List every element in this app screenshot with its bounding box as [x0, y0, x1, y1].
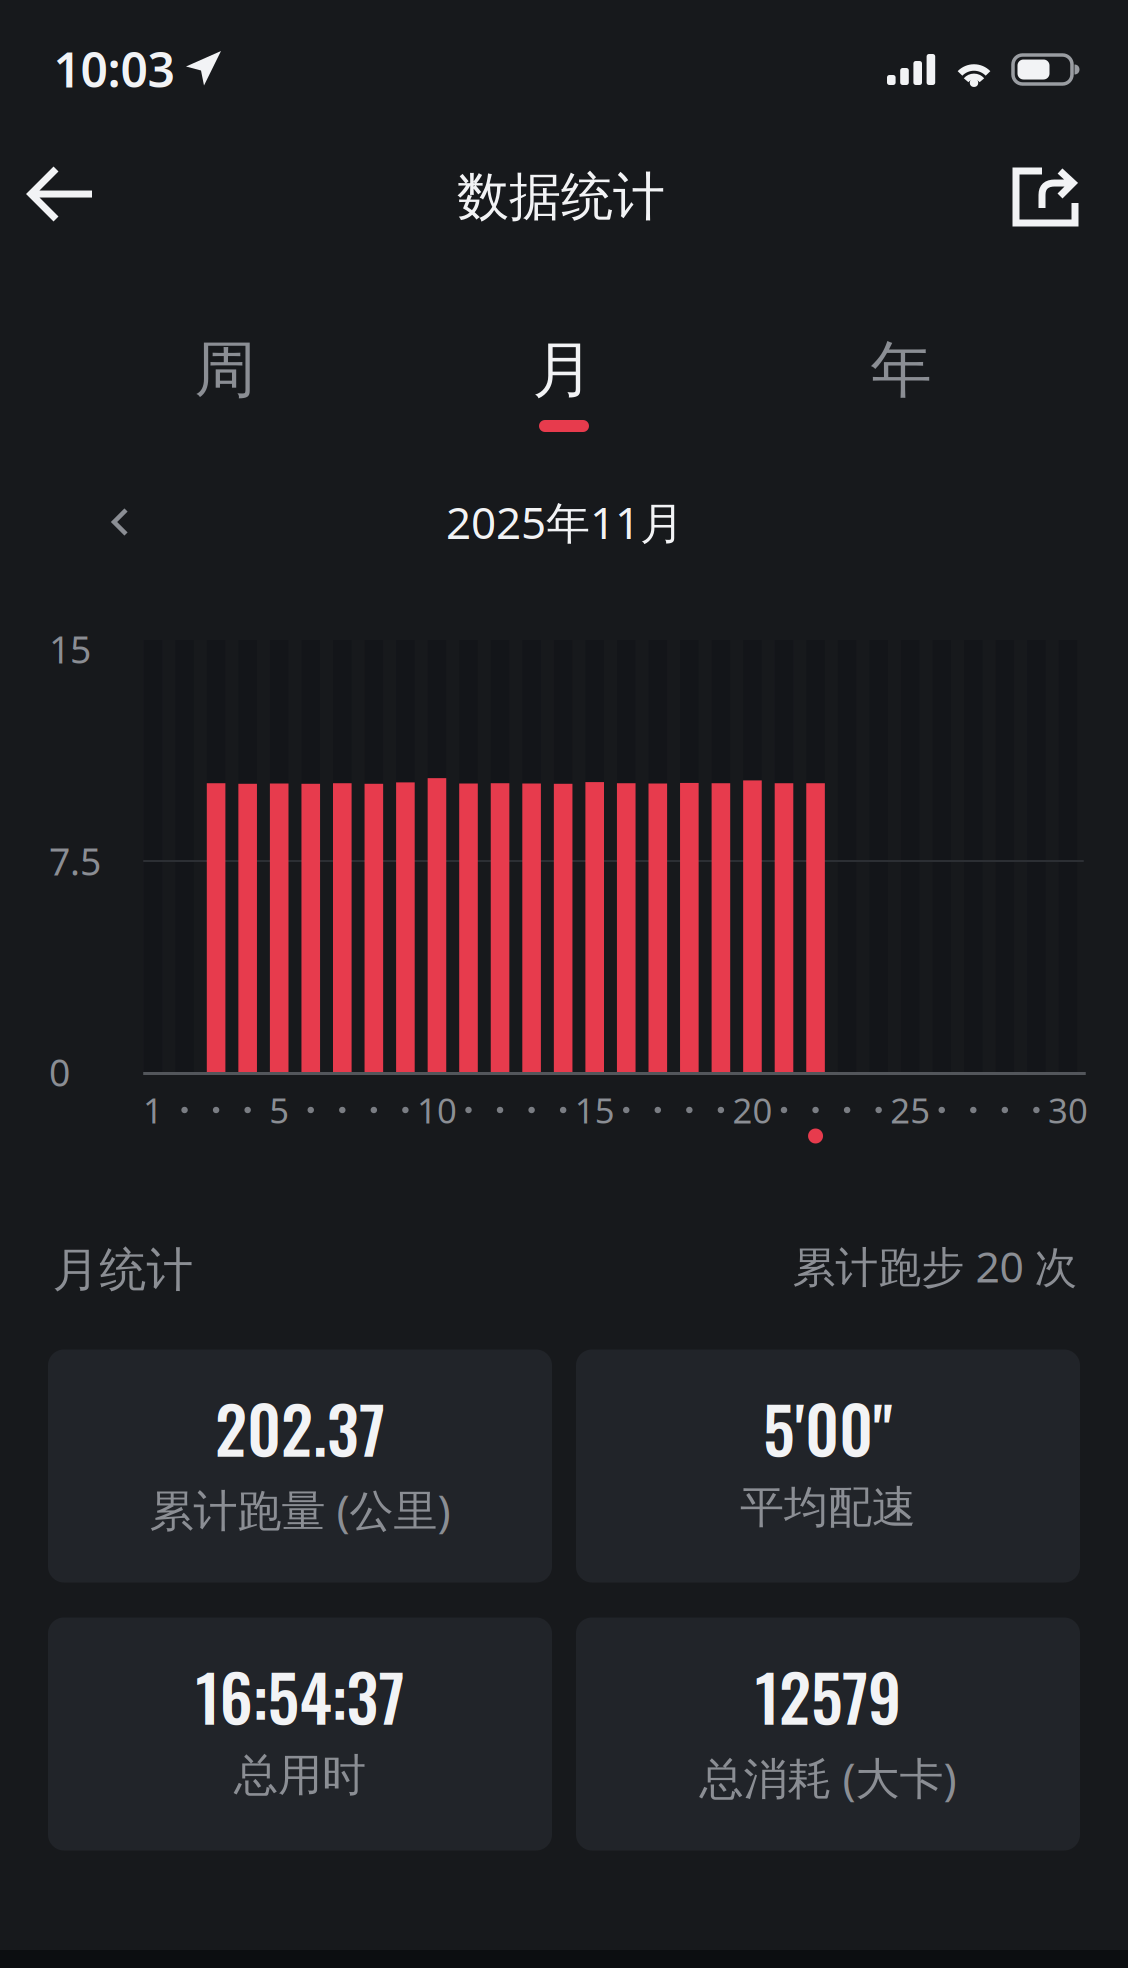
button[interactable]: Previous month — [78, 480, 162, 564]
staticText: 15 — [575, 1087, 615, 1133]
staticText: 平均配速 — [740, 1480, 916, 1534]
staticText: 30 — [1048, 1087, 1088, 1133]
staticText: 202.37 — [215, 1380, 385, 1475]
button[interactable]: Back — [6, 138, 118, 250]
staticText: 10:03 — [53, 37, 174, 101]
staticText: 月统计 — [52, 1241, 193, 1299]
button[interactable]: 12579 — [576, 1617, 1080, 1850]
staticText: 数据统计 — [457, 165, 665, 229]
button[interactable]: 5'00'' — [576, 1349, 1080, 1582]
staticText: 15 — [49, 624, 91, 674]
staticText: 年 — [870, 332, 931, 408]
button[interactable]: 202.37 — [48, 1349, 552, 1582]
staticText: 月 — [532, 332, 593, 408]
button[interactable]: Share — [990, 141, 1102, 253]
staticText: 总用时 — [234, 1748, 366, 1802]
staticText: 16:54:37 — [195, 1648, 404, 1743]
staticText: 20 — [732, 1087, 772, 1133]
staticText: 12579 — [755, 1648, 901, 1743]
staticText: 5 — [269, 1087, 289, 1133]
staticText: 累计跑步 20 次 — [792, 1238, 1077, 1294]
staticText: 累计跑量 (公里) — [149, 1480, 450, 1539]
staticText: 10 — [417, 1087, 457, 1133]
button[interactable]: 月 — [398, 305, 728, 435]
staticText: 1 — [143, 1087, 163, 1133]
staticText: 0 — [49, 1047, 70, 1097]
button[interactable]: 年 — [736, 305, 1066, 435]
staticText: 2025年11月 — [446, 493, 684, 551]
staticText: 周 — [194, 332, 255, 408]
staticText: 25 — [890, 1087, 930, 1133]
button[interactable]: 16:54:37 — [48, 1617, 552, 1850]
staticText: 总消耗 (大卡) — [699, 1748, 956, 1807]
staticText: 5'00'' — [763, 1380, 893, 1475]
button[interactable]: 周 — [60, 305, 390, 435]
staticText: 7.5 — [49, 836, 101, 886]
